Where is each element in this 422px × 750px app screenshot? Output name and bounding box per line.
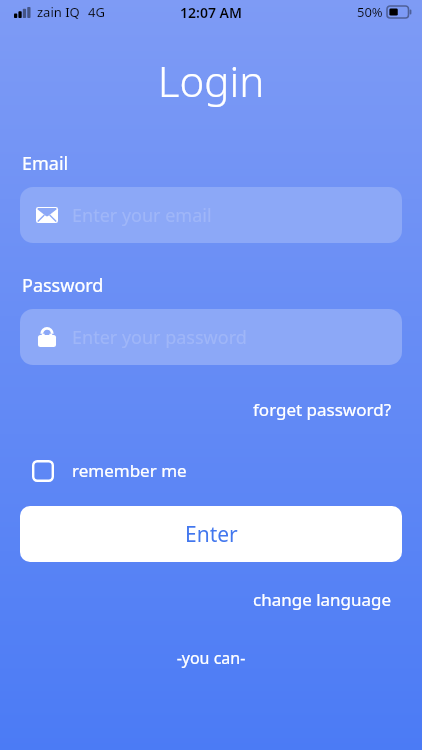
button[interactable]: change language — [223, 582, 422, 617]
staticText: remember me — [72, 459, 187, 482]
button[interactable]: forget password? — [223, 392, 422, 427]
staticText: change language — [253, 588, 392, 611]
staticText: 12:07 AM — [180, 3, 242, 22]
staticText: -you can- — [0, 647, 422, 669]
button[interactable]: Enter your password — [20, 309, 402, 365]
staticText: 4G — [88, 3, 105, 21]
button[interactable]: Enter — [20, 506, 402, 562]
staticText: Password — [22, 273, 104, 298]
button[interactable]: Enter your email — [20, 187, 402, 243]
button[interactable]: remember me — [20, 453, 201, 488]
staticText: Enter your password — [72, 325, 247, 350]
staticText: 50% — [357, 3, 383, 21]
staticText: Email — [22, 151, 69, 176]
staticText: Enter — [185, 520, 238, 549]
staticText: Enter your email — [72, 203, 212, 228]
staticText: forget password? — [253, 398, 392, 421]
staticText: zain IQ — [37, 3, 80, 21]
staticText: Login — [0, 52, 422, 109]
